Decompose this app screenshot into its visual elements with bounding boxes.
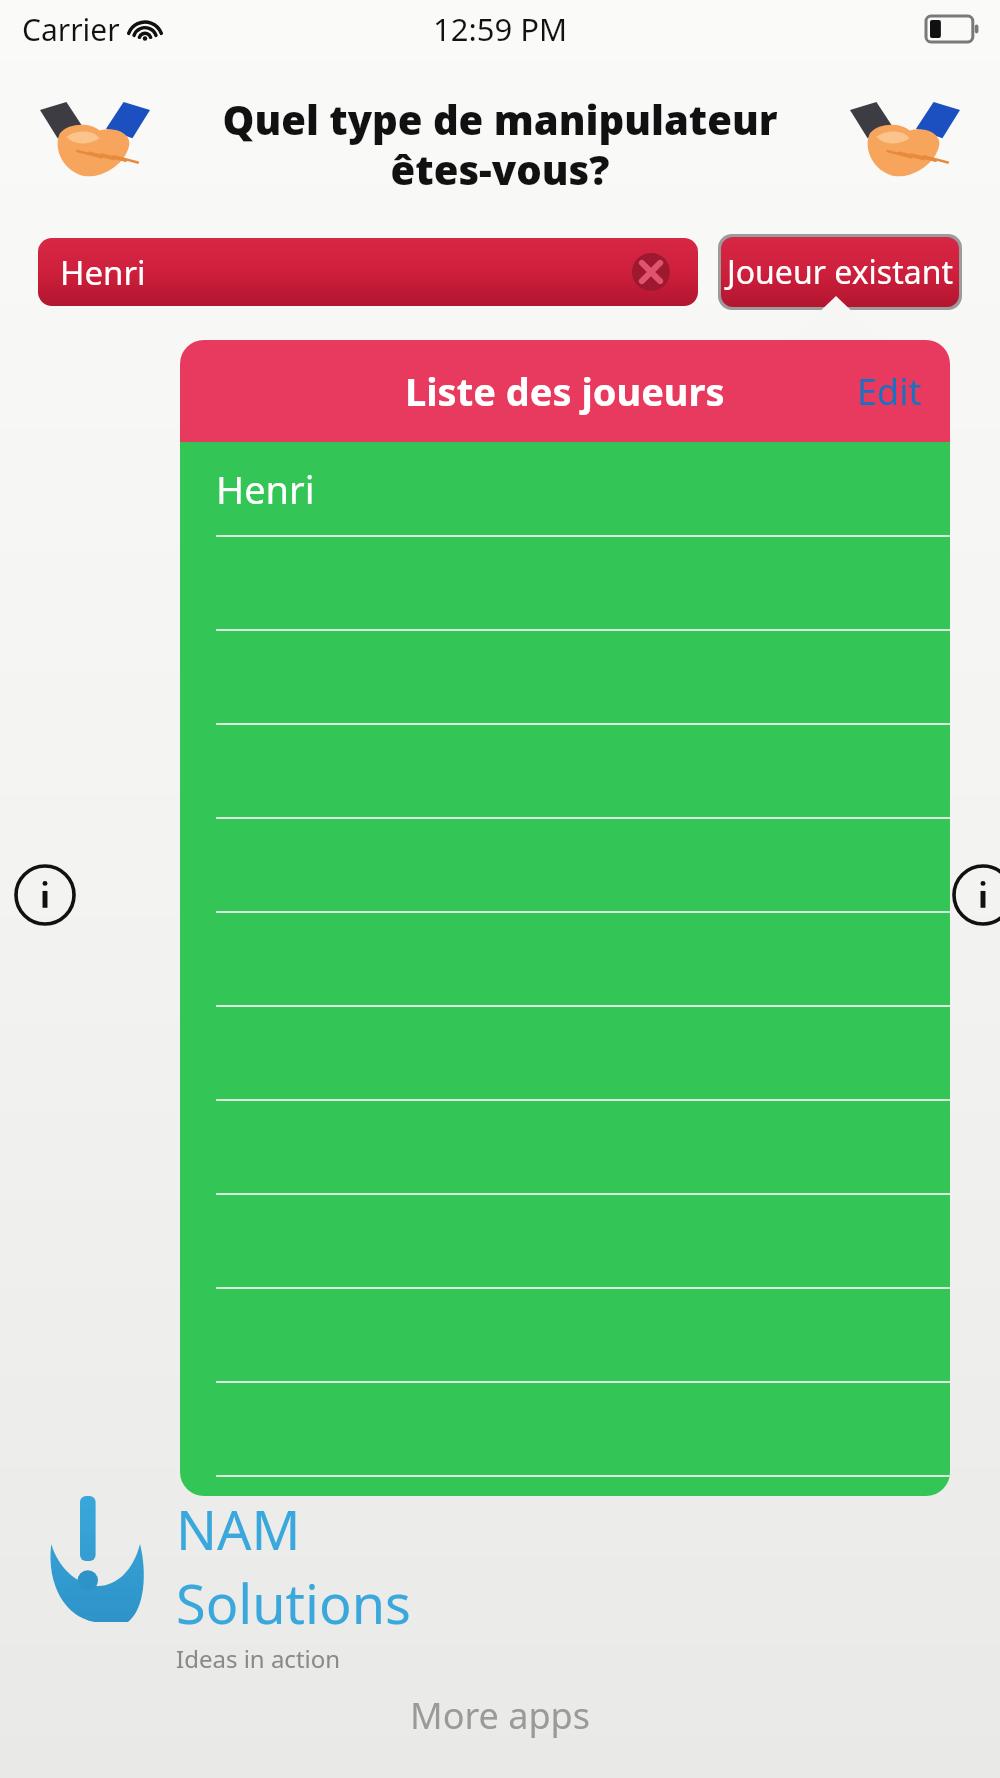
button[interactable]: Henri: [180, 442, 950, 536]
button[interactable]: Information: [14, 864, 76, 926]
staticText: More apps: [410, 1691, 590, 1740]
staticText: Henri: [216, 463, 315, 515]
staticText: NAM: [176, 1492, 301, 1566]
staticText: Edit: [857, 367, 922, 416]
button[interactable]: Joueur existant: [721, 237, 959, 307]
staticText: Henri: [60, 250, 146, 295]
staticText: Carrier: [22, 9, 120, 50]
staticText: 12:59 PM: [433, 8, 568, 50]
button[interactable]: More apps: [386, 1681, 614, 1750]
staticText: Joueur existant: [727, 250, 953, 294]
button[interactable]: Clear text: [632, 253, 670, 291]
button[interactable]: Edit: [857, 367, 922, 416]
staticText: Solutions: [176, 1566, 411, 1640]
staticText: Quel type de manipulateur êtes-vous?: [220, 92, 780, 197]
button[interactable]: Henri: [38, 238, 698, 306]
button[interactable]: Help: [952, 864, 1000, 926]
staticText: Liste des joueurs: [405, 365, 725, 417]
staticText: Ideas in action: [176, 1642, 341, 1675]
